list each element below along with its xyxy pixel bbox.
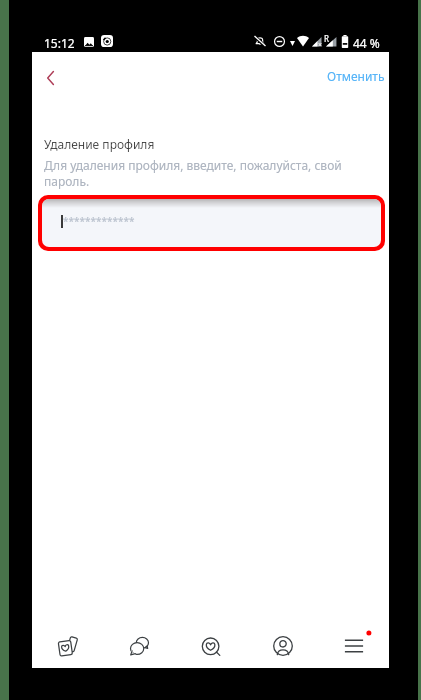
button[interactable]: Back <box>32 59 69 96</box>
staticText: Отменить <box>327 68 385 84</box>
staticText: Удаление профиля <box>44 136 155 152</box>
staticText: R <box>324 33 329 44</box>
button[interactable]: Search <box>190 625 232 667</box>
staticText: Для удаления профиля, введите, пожалуйст… <box>44 157 344 189</box>
staticText: ************* <box>63 214 135 228</box>
staticText: 15:12 <box>44 35 75 51</box>
button[interactable]: Chats <box>119 625 161 667</box>
button[interactable]: ************* <box>42 199 381 247</box>
button[interactable]: Menu <box>333 625 375 667</box>
button[interactable]: Отменить <box>316 58 385 90</box>
button[interactable]: Cards <box>47 625 89 667</box>
staticText: 44 % <box>353 35 380 51</box>
button[interactable]: Profile <box>262 625 304 667</box>
